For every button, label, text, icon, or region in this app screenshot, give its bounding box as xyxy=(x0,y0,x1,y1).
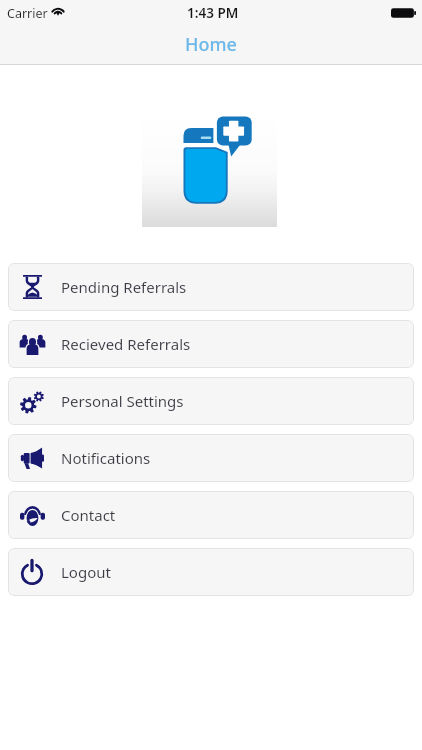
staticText: 1:43 PM xyxy=(187,4,239,22)
button[interactable]: Notifications xyxy=(8,434,414,482)
button[interactable]: Contact xyxy=(8,491,414,539)
button[interactable]: Logout xyxy=(8,548,414,596)
staticText: Contact xyxy=(61,505,116,525)
staticText: Carrier xyxy=(7,5,48,22)
button[interactable]: Recieved Referrals xyxy=(8,320,414,368)
staticText: Logout xyxy=(61,562,111,582)
staticText: Pending Referrals xyxy=(61,277,187,297)
button[interactable]: Pending Referrals xyxy=(8,263,414,311)
staticText: Home xyxy=(185,32,237,57)
staticText: Recieved Referrals xyxy=(61,334,191,354)
button[interactable]: Personal Settings xyxy=(8,377,414,425)
other: Medical referral app logo xyxy=(142,114,277,227)
staticText: Notifications xyxy=(61,448,151,468)
staticText: Personal Settings xyxy=(61,391,184,411)
